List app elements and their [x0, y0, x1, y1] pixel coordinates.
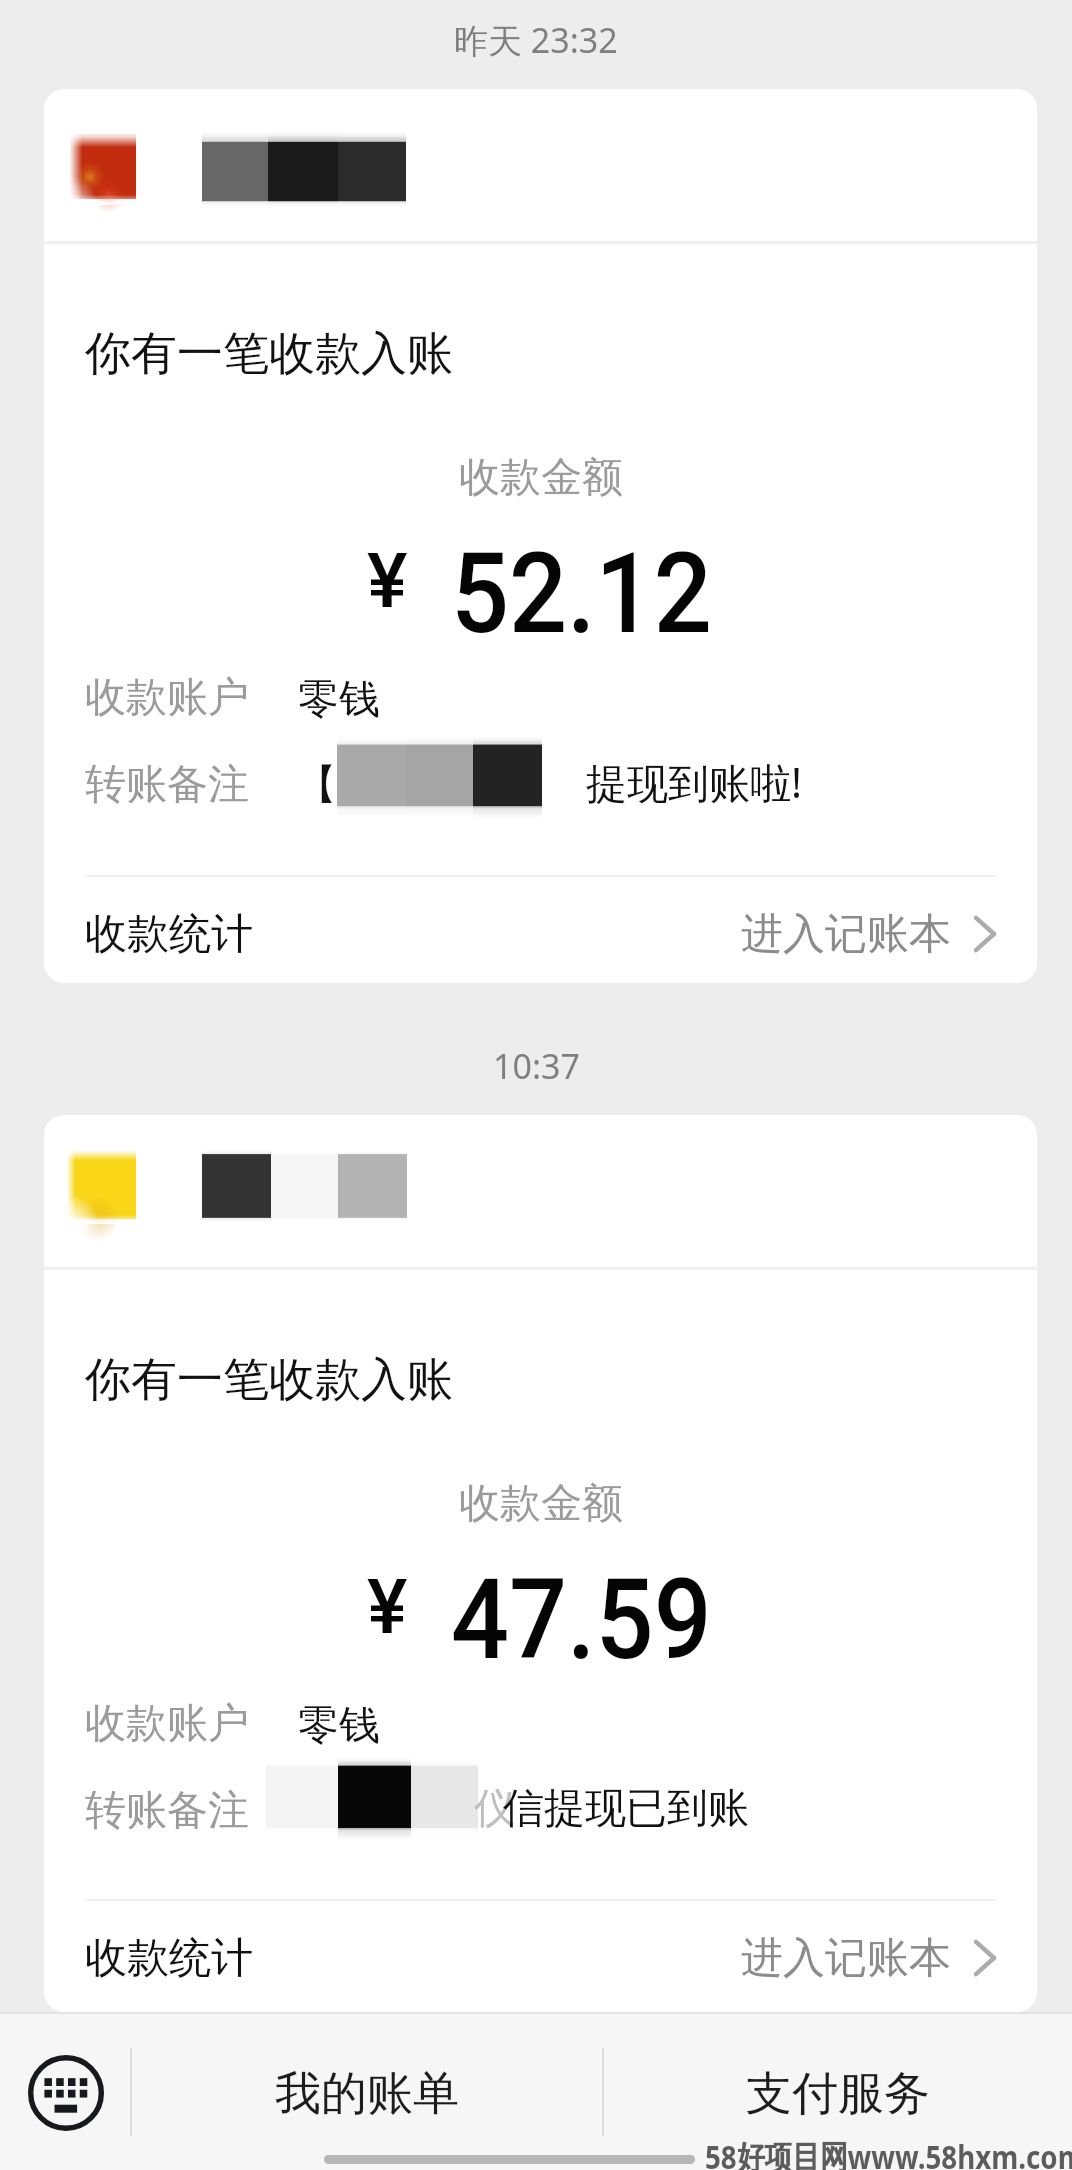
button[interactable]	[44, 877, 1037, 978]
staticText: 信提现已到账	[503, 1783, 749, 1835]
staticText: 52.12	[451, 529, 712, 659]
button[interactable]: 你有一笔收款入账	[44, 89, 1037, 983]
staticText: 我的账单	[275, 2065, 459, 2123]
staticText: 收款账户	[85, 1698, 249, 1750]
staticText: 转账备注	[85, 759, 249, 811]
staticText: 收款金额	[459, 1478, 623, 1530]
staticText: 昨天 23:32	[454, 17, 618, 63]
staticText: 收款统计	[85, 1932, 253, 1985]
staticText: 10:37	[493, 1043, 580, 1089]
staticText: ¥	[367, 536, 408, 625]
staticText: 提现到账啦!	[586, 754, 803, 810]
staticText: 收款账户	[85, 672, 249, 724]
button[interactable]: 支付服务	[604, 2032, 1072, 2154]
button[interactable]	[44, 1901, 1037, 2002]
staticText: 你有一笔收款入账	[85, 1351, 453, 1409]
staticText: 收款统计	[85, 908, 253, 961]
staticText: 47.59	[451, 1555, 712, 1685]
staticText: 你有一笔收款入账	[85, 325, 453, 383]
staticText: 转账备注	[85, 1785, 249, 1837]
button[interactable]: Keyboard	[0, 2032, 132, 2154]
staticText: 【	[296, 759, 337, 811]
button[interactable]: 我的账单	[132, 2032, 602, 2154]
staticText: 进入记账本	[741, 1932, 951, 1985]
staticText: 支付服务	[746, 2065, 930, 2123]
staticText: 零钱	[298, 674, 380, 726]
staticText: 收款金额	[459, 452, 623, 504]
staticText: 进入记账本	[741, 908, 951, 961]
staticText: ¥	[367, 1562, 408, 1651]
button[interactable]: 你有一笔收款入账	[44, 1115, 1037, 2012]
staticText: 零钱	[298, 1700, 380, 1752]
staticText: 58好项目网www.58hxm.com	[705, 2134, 1072, 2170]
staticText: 仪	[474, 1783, 515, 1835]
